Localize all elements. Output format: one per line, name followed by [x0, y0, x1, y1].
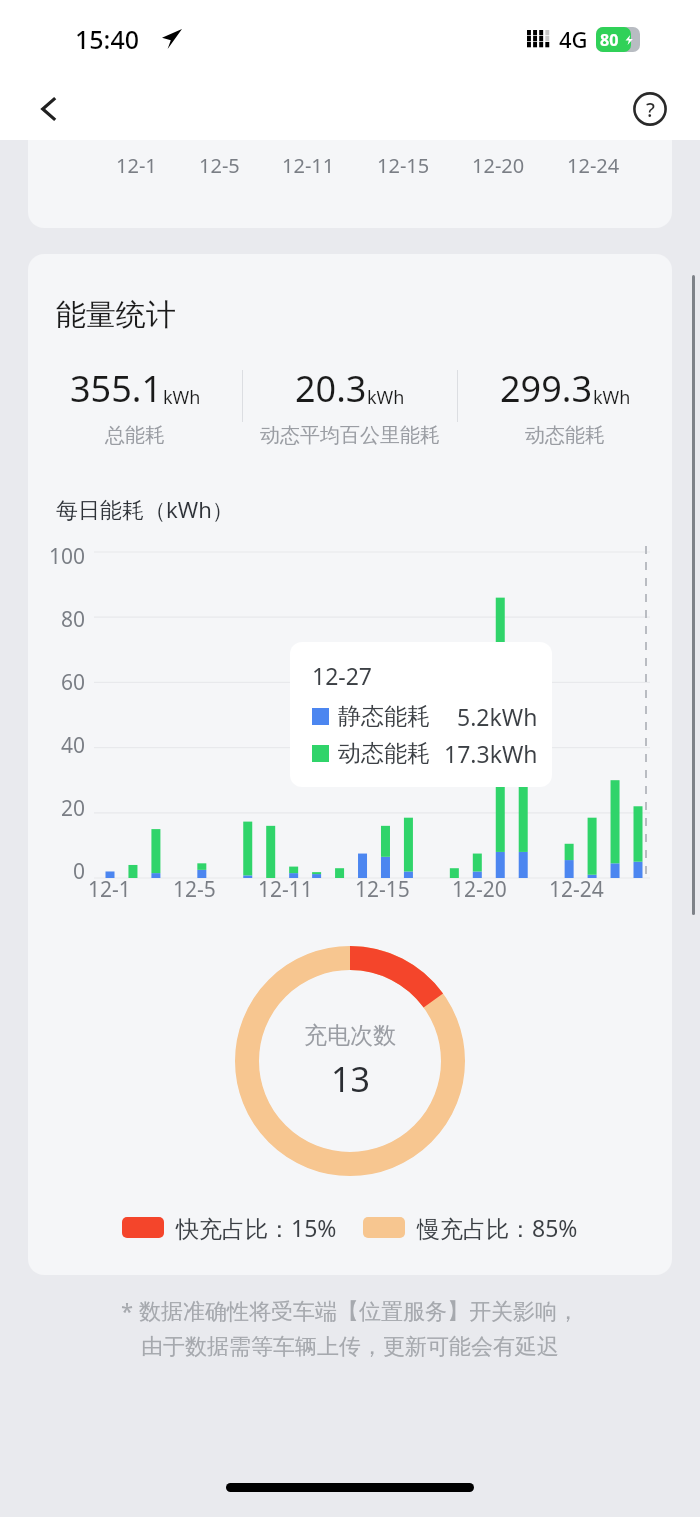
staticText: 40 [61, 731, 86, 760]
staticText: 20 [61, 794, 86, 823]
staticText: kWh [593, 385, 631, 410]
staticText: 100 [49, 542, 86, 571]
staticText: 12-20 [452, 875, 507, 904]
staticText: 12-11 [258, 875, 313, 904]
staticText: 12-27 [312, 660, 373, 691]
staticText: 静态能耗 [338, 702, 430, 731]
staticText: 12-5 [173, 875, 216, 904]
staticText: * 数据准确性将受车端【位置服务】开关影响， [121, 1295, 579, 1325]
staticText: 动态能耗 [525, 423, 605, 448]
staticText: kWh [367, 385, 405, 410]
staticText: 12-24 [549, 875, 604, 904]
staticText: 快充占比：15% [176, 1212, 337, 1243]
staticText: 能量统计 [56, 296, 176, 334]
staticText: 由于数据需等车辆上传，更新可能会有延迟 [141, 1333, 559, 1361]
staticText: 总能耗 [105, 423, 165, 448]
staticText: 12-11 [282, 152, 335, 179]
staticText: 80 [600, 29, 619, 51]
staticText: 17.3kWh [444, 738, 538, 769]
staticText: 0 [73, 857, 86, 886]
staticText: 12-1 [116, 152, 157, 179]
staticText: 60 [61, 668, 86, 697]
staticText: 慢充占比：85% [417, 1212, 578, 1243]
staticText: 动态平均百公里能耗 [260, 423, 440, 448]
button[interactable]: Back [26, 85, 74, 133]
staticText: 15:40 [75, 22, 140, 56]
staticText: 80 [61, 605, 86, 634]
staticText: 12-5 [199, 152, 240, 179]
staticText: 12-20 [472, 152, 525, 179]
staticText: 13 [331, 1056, 370, 1102]
staticText: 299.3 [500, 364, 593, 413]
staticText: 12-24 [567, 152, 620, 179]
button[interactable]: Help [626, 85, 674, 133]
staticText: 12-15 [377, 152, 430, 179]
staticText: 355.1 [70, 364, 163, 413]
staticText: kWh [163, 385, 201, 410]
staticText: 12-15 [355, 875, 410, 904]
staticText: 每日能耗（kWh） [56, 494, 234, 524]
staticText: ? [646, 96, 655, 123]
staticText: 充电次数 [304, 1021, 396, 1050]
staticText: 动态能耗 [338, 739, 430, 768]
staticText: 5.2kWh [457, 701, 538, 732]
staticText: 12-1 [88, 875, 131, 904]
staticText: 20.3 [295, 364, 367, 413]
staticText: 4G [559, 24, 588, 54]
